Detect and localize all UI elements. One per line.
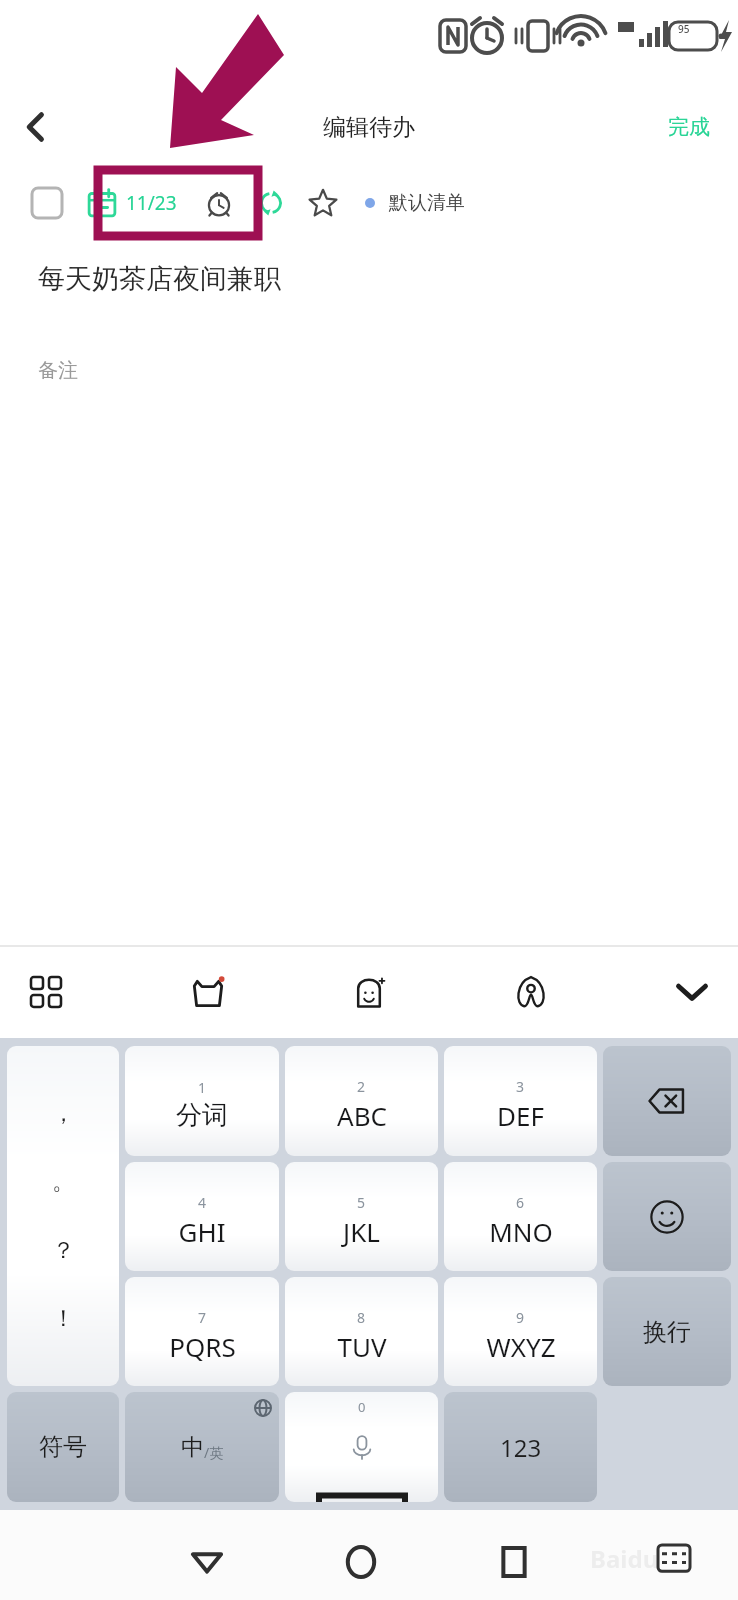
staticText: 中 <box>181 1433 204 1462</box>
button[interactable]: 中 <box>125 1392 279 1502</box>
staticText: ， <box>52 1099 75 1128</box>
button[interactable]: Repeat <box>249 181 293 225</box>
staticText: JKL <box>343 1214 380 1249</box>
staticText: 11/23 <box>126 190 177 216</box>
staticText: 符号 <box>39 1432 87 1462</box>
button[interactable]: Emoji <box>603 1162 731 1271</box>
button[interactable]: Recents <box>482 1530 546 1594</box>
staticText: 5 <box>357 1193 366 1212</box>
staticText: TUV <box>337 1329 387 1364</box>
button[interactable]: 换行 <box>603 1277 731 1386</box>
staticText: ！ <box>52 1304 75 1333</box>
staticText: 。 <box>52 1167 75 1196</box>
staticText: 95 <box>678 22 718 36</box>
staticText: 分词 <box>176 1099 228 1132</box>
button[interactable]: 每天奶茶店夜间兼职 <box>38 262 281 296</box>
staticText: DEF <box>497 1098 544 1133</box>
button[interactable]: Keyboard menu <box>18 964 74 1020</box>
staticText: 123 <box>500 1431 542 1464</box>
button[interactable]: Home <box>329 1530 393 1594</box>
button[interactable]: Switch input method <box>645 1532 703 1590</box>
staticText: WXYZ <box>486 1329 556 1364</box>
button[interactable]: Back <box>8 99 64 155</box>
staticText: 编辑待办 <box>323 113 415 142</box>
staticText: ABC <box>337 1098 387 1133</box>
button[interactable]: Stickers <box>341 964 397 1020</box>
button[interactable]: Baidu input <box>180 964 236 1020</box>
staticText: 0 <box>358 1398 366 1416</box>
staticText: ？ <box>52 1236 75 1265</box>
button[interactable]: ， <box>7 1046 119 1386</box>
staticText: 换行 <box>643 1317 691 1347</box>
staticText: GHI <box>178 1214 226 1249</box>
staticText: 8 <box>357 1308 366 1327</box>
button[interactable]: 11/23 <box>82 185 183 221</box>
staticText: 6 <box>516 1193 525 1212</box>
button[interactable]: 1 <box>125 1046 279 1156</box>
staticText: 2 <box>357 1077 366 1096</box>
button[interactable]: Complete <box>24 180 70 226</box>
button[interactable]: Space <box>285 1392 438 1502</box>
button[interactable]: 7 <box>125 1277 279 1386</box>
button[interactable]: 123 <box>444 1392 597 1502</box>
button[interactable]: 4 <box>125 1162 279 1271</box>
button[interactable]: Account <box>503 964 559 1020</box>
staticText: 默认清单 <box>389 191 465 215</box>
button[interactable]: Backspace <box>603 1046 731 1156</box>
button[interactable]: 9 <box>444 1277 597 1386</box>
staticText: 1 <box>198 1078 207 1097</box>
button[interactable]: 符号 <box>7 1392 119 1502</box>
staticText: MNO <box>489 1214 553 1249</box>
button[interactable]: 完成 <box>662 108 716 146</box>
staticText: PQRS <box>169 1329 236 1364</box>
button[interactable]: 2 <box>285 1046 438 1156</box>
staticText: 4 <box>198 1193 207 1212</box>
button[interactable]: Reminder <box>197 181 241 225</box>
button[interactable]: 备注 <box>38 358 78 383</box>
button[interactable]: 3 <box>444 1046 597 1156</box>
button[interactable]: 5 <box>285 1162 438 1271</box>
staticText: 7 <box>198 1308 207 1327</box>
button[interactable]: Star <box>301 181 345 225</box>
button[interactable]: 6 <box>444 1162 597 1271</box>
staticText: /英 <box>204 1443 224 1462</box>
button[interactable]: Back <box>175 1530 239 1594</box>
staticText: 9 <box>516 1308 525 1327</box>
staticText: 完成 <box>668 114 710 140</box>
button[interactable]: Hide keyboard <box>664 964 720 1020</box>
staticText: 3 <box>516 1077 525 1096</box>
staticText: Baidu <box>590 1542 659 1575</box>
button[interactable]: 8 <box>285 1277 438 1386</box>
button[interactable]: 默认清单 <box>361 187 469 219</box>
